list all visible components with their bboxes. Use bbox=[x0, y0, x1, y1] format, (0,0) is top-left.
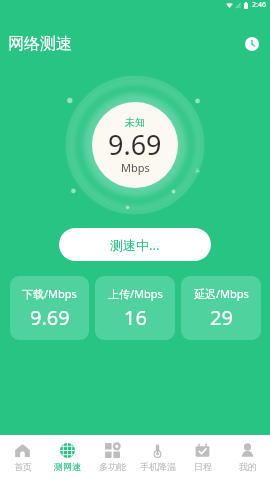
staticText: 29 bbox=[210, 304, 233, 331]
staticText: 多功能 bbox=[99, 461, 126, 472]
staticText: 下载/Mbps bbox=[22, 286, 77, 301]
staticText: 测网速 bbox=[54, 461, 81, 472]
staticText: 我的 bbox=[239, 461, 257, 472]
staticText: 16 bbox=[124, 304, 147, 331]
button[interactable]: 多功能 bbox=[90, 443, 135, 472]
button[interactable]: 测速中... bbox=[59, 228, 211, 261]
staticText: 日程 bbox=[194, 461, 212, 472]
staticText: 延迟/Mbps bbox=[194, 286, 249, 301]
button[interactable]: 下载/Mbps bbox=[10, 276, 89, 340]
staticText: 手机降温 bbox=[140, 461, 176, 472]
staticText: 9.69 bbox=[30, 304, 70, 331]
button[interactable]: 首页 bbox=[0, 443, 45, 472]
button[interactable]: 手机降温 bbox=[135, 443, 180, 472]
staticText: 首页 bbox=[14, 461, 32, 472]
staticText: 网络测速 bbox=[8, 34, 72, 54]
staticText: 2:46 bbox=[252, 0, 266, 10]
button[interactable]: 上传/Mbps bbox=[95, 276, 175, 340]
button[interactable]: 我的 bbox=[225, 443, 270, 472]
button[interactable]: 测网速 bbox=[45, 443, 90, 472]
staticText: 测速中... bbox=[110, 236, 160, 254]
button[interactable]: History bbox=[244, 36, 260, 52]
button[interactable]: 延迟/Mbps bbox=[181, 276, 261, 340]
staticText: Mbps bbox=[121, 160, 150, 175]
button[interactable]: 日程 bbox=[180, 443, 225, 472]
staticText: 未知 bbox=[125, 116, 145, 129]
staticText: 9.69 bbox=[108, 126, 162, 163]
staticText: 上传/Mbps bbox=[108, 286, 163, 301]
